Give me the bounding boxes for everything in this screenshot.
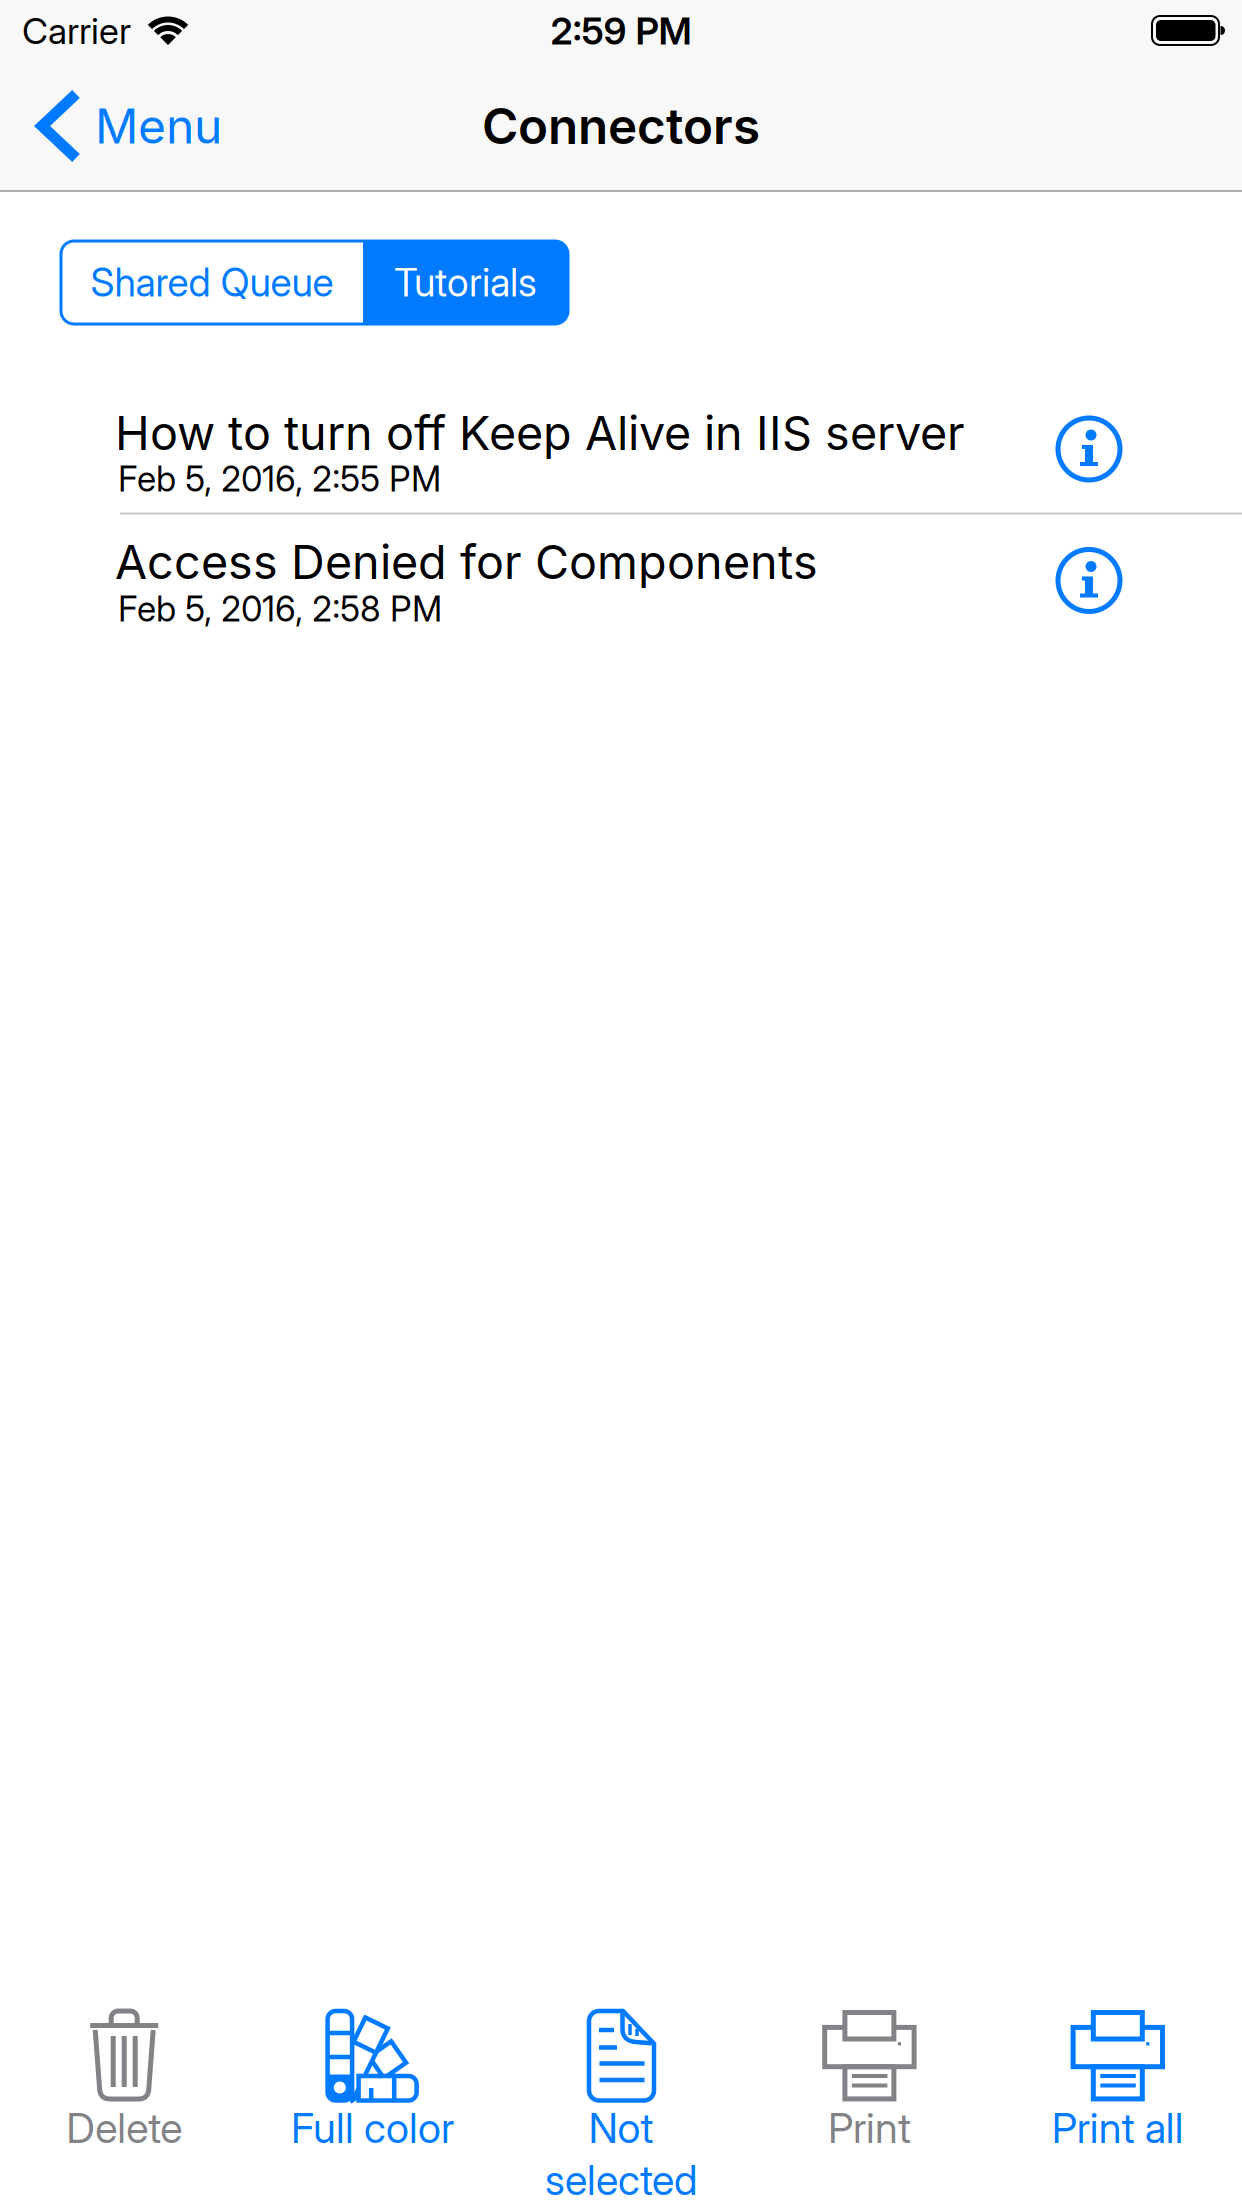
staticText: Delete xyxy=(66,2104,182,2152)
button[interactable]: Full color xyxy=(249,1998,497,2208)
staticText: Menu xyxy=(95,98,222,154)
staticText: Full color xyxy=(291,2104,454,2152)
button[interactable]: Access Denied for Components xyxy=(0,513,1242,646)
staticText: Not xyxy=(588,2104,653,2152)
button[interactable]: How to turn off Keep Alive in IIS server xyxy=(0,380,1242,513)
button[interactable]: Back xyxy=(18,76,260,176)
staticText: Access Denied for Components xyxy=(115,534,818,590)
staticText: Shared Queue xyxy=(90,260,333,305)
button[interactable]: More Info xyxy=(1049,540,1129,620)
button[interactable]: Print all xyxy=(994,1998,1242,2208)
staticText: selected xyxy=(545,2156,697,2204)
staticText: Carrier xyxy=(22,10,131,52)
button[interactable]: Tutorials xyxy=(363,241,568,324)
staticText: Print all xyxy=(1052,2104,1184,2152)
button[interactable]: Delete xyxy=(0,1998,248,2208)
button[interactable]: Not xyxy=(497,1998,745,2208)
staticText: How to turn off Keep Alive in IIS server xyxy=(115,405,965,461)
staticText: Feb 5, 2016, 2:55 PM xyxy=(118,459,441,499)
button[interactable]: Shared Queue xyxy=(61,241,363,324)
staticText: Feb 5, 2016, 2:58 PM xyxy=(118,589,442,629)
button[interactable]: Print xyxy=(745,1998,993,2208)
staticText: Tutorials xyxy=(394,260,537,305)
staticText: Connectors xyxy=(482,97,760,155)
staticText: Print xyxy=(828,2104,911,2152)
staticText: 2:59 PM xyxy=(550,9,691,53)
button[interactable]: More Info xyxy=(1049,409,1129,489)
